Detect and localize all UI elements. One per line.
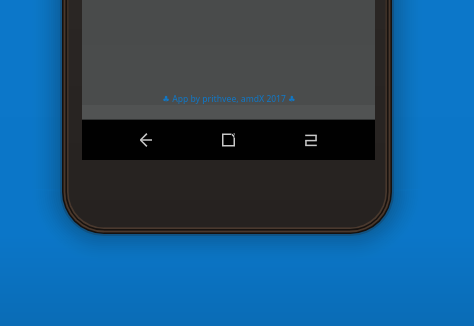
button[interactable]: Back — [130, 120, 163, 160]
button[interactable]: ♣ App by prithvee, amdX 2017 ♣ — [82, 90, 375, 107]
button[interactable]: Home — [212, 120, 245, 160]
staticText: ♣ App by prithvee, amdX 2017 ♣ — [162, 93, 296, 105]
button[interactable]: Recent apps — [295, 120, 328, 160]
